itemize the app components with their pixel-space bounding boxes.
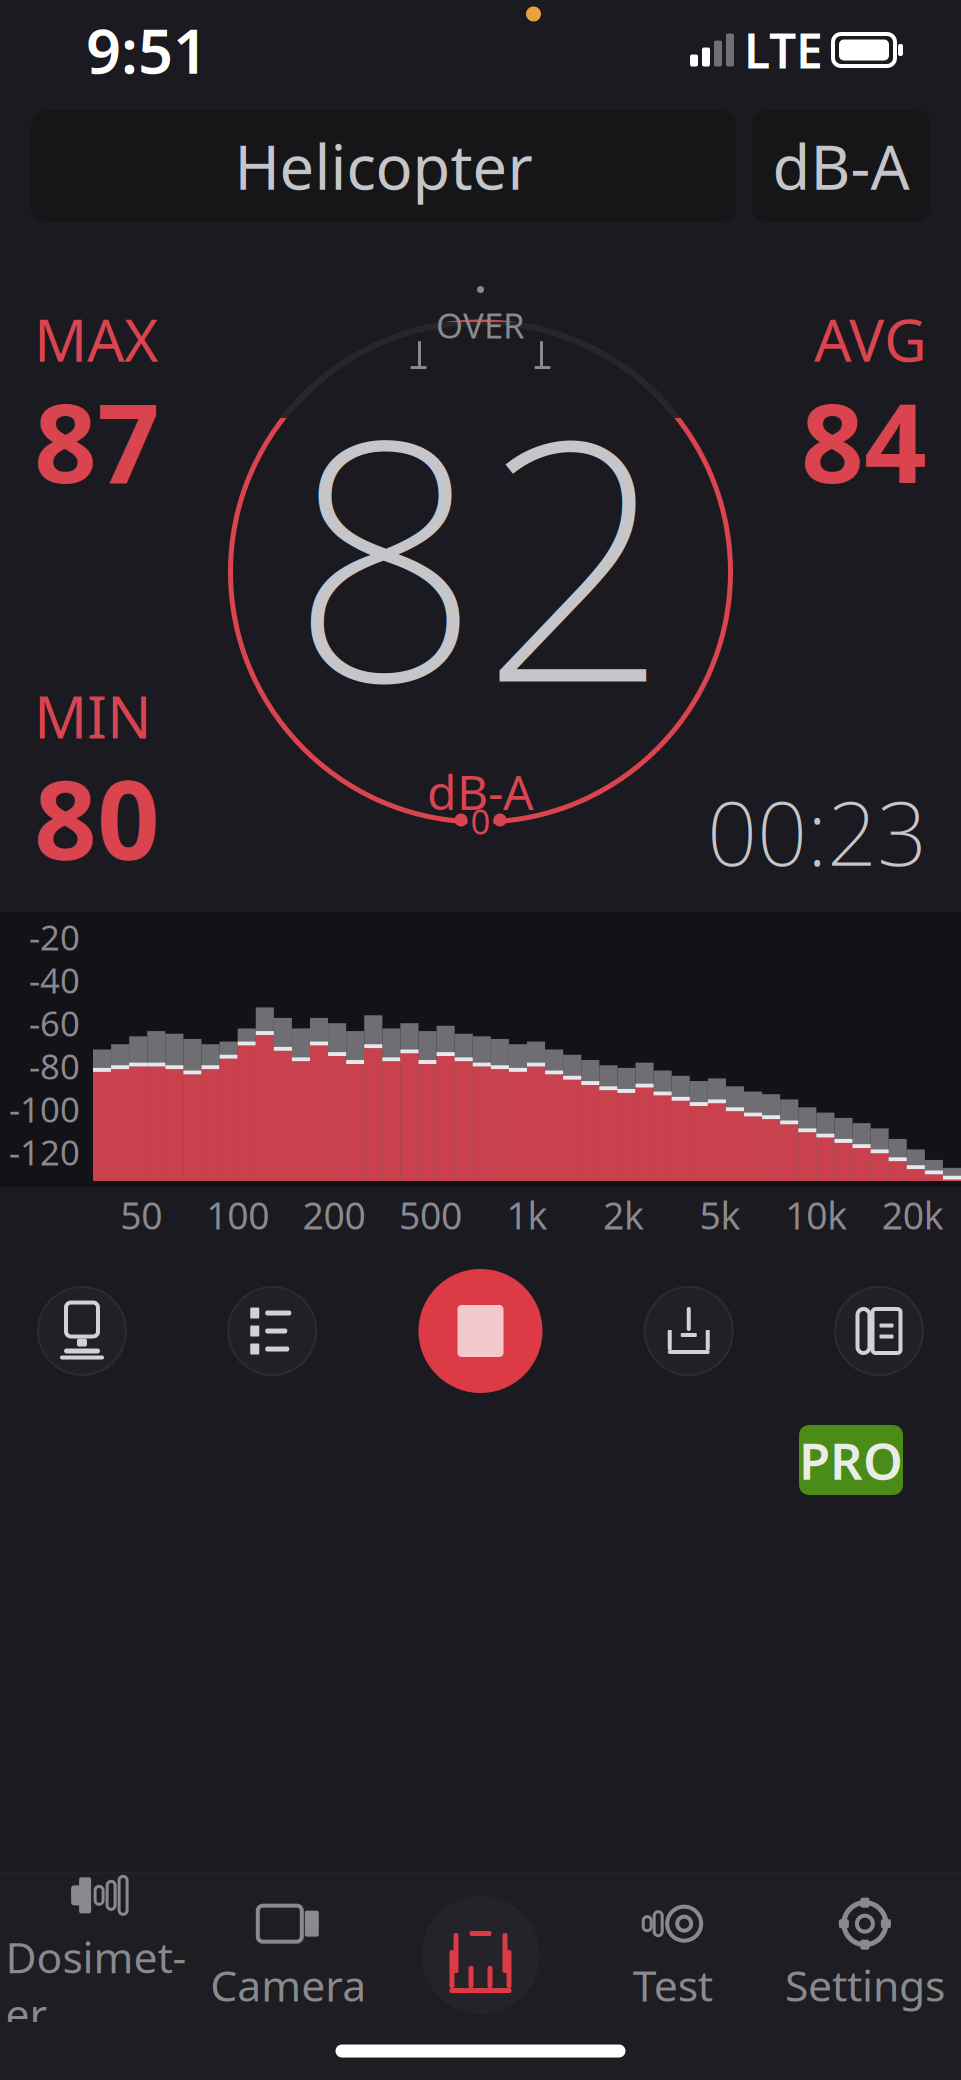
staticText: MIN (34, 677, 152, 755)
staticText: -60 (29, 1000, 80, 1046)
staticText: dB-A (772, 125, 909, 207)
button[interactable]: Report (835, 1287, 923, 1375)
staticText: 80 (34, 745, 160, 890)
staticText: Dosimeter (6, 1928, 187, 2042)
staticText: Settings (785, 1957, 945, 2013)
staticText: 1k (506, 1190, 547, 1240)
staticText: 100 (206, 1190, 269, 1240)
button[interactable]: Camera (192, 1896, 384, 2014)
button[interactable]: Helicopter (31, 110, 736, 222)
staticText: MAX (34, 300, 158, 378)
staticText: 87 (34, 368, 160, 513)
staticText: 9:51 (86, 9, 208, 91)
staticText: 50 (120, 1190, 162, 1240)
button[interactable]: Calibrate (38, 1287, 126, 1375)
staticText: Helicopter (234, 125, 532, 207)
staticText: OVER (436, 302, 525, 348)
staticText: 2k (603, 1190, 644, 1240)
button[interactable]: Dosimeter (0, 1896, 192, 2014)
staticText: 500 (399, 1190, 462, 1240)
staticText: 84 (801, 368, 927, 513)
staticText: Camera (210, 1957, 366, 2013)
button[interactable]: dB-A (752, 110, 930, 222)
staticText: 0 (470, 798, 490, 844)
staticText: PRO (799, 1426, 903, 1494)
staticText: 82 (290, 331, 670, 773)
staticText: dB-A (427, 759, 534, 823)
staticText: AVG (814, 300, 927, 378)
button[interactable]: PRO (799, 1425, 903, 1495)
button[interactable]: Settings (769, 1896, 961, 2014)
button[interactable]: Save (645, 1287, 733, 1375)
staticText: 00:23 (707, 773, 927, 890)
staticText: -40 (29, 957, 80, 1003)
staticText: -100 (9, 1086, 80, 1132)
staticText: -80 (29, 1043, 80, 1089)
staticText: LTE (744, 18, 823, 82)
staticText: 20k (882, 1190, 944, 1240)
staticText: Test (633, 1957, 713, 2013)
staticText: 200 (303, 1190, 366, 1240)
button[interactable]: Levels list (228, 1287, 316, 1375)
button[interactable]: Home (384, 1896, 577, 2014)
staticText: 5k (699, 1190, 740, 1240)
staticText: 10k (785, 1190, 847, 1240)
button[interactable]: Stop recording (418, 1269, 542, 1393)
staticText: -120 (9, 1129, 80, 1175)
button[interactable]: Test (577, 1896, 769, 2014)
staticText: -20 (29, 914, 80, 960)
